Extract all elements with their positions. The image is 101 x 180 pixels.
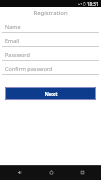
staticText: Name (5, 23, 21, 30)
staticText: Confirm password (5, 65, 53, 72)
button[interactable]: Back (8, 165, 30, 180)
button[interactable]: Recent apps (71, 165, 93, 180)
button[interactable]: Email (0, 35, 101, 49)
button[interactable]: Name (0, 21, 101, 35)
button[interactable]: Password (0, 49, 101, 63)
button[interactable]: Next (5, 87, 96, 100)
staticText: Email (5, 37, 20, 44)
staticText: Next (44, 90, 58, 97)
staticText: 18:31 (87, 1, 99, 7)
staticText: Registration (33, 9, 68, 17)
button[interactable]: Home (40, 165, 62, 180)
button[interactable]: Confirm password (0, 63, 101, 77)
staticText: Password (5, 51, 30, 58)
